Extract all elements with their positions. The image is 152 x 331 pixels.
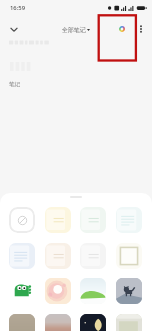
button[interactable]: Note background style — [116, 314, 142, 331]
staticText: 16:59 — [10, 4, 26, 12]
button[interactable]: Note background style — [80, 314, 106, 331]
button[interactable]: Collapse — [4, 20, 23, 39]
button[interactable]: Note background style — [9, 207, 35, 233]
staticText: 笔记 — [9, 81, 21, 88]
button[interactable]: 全部笔记 — [62, 26, 90, 33]
staticText: 全部笔记 — [62, 26, 86, 33]
button[interactable]: Note background style — [45, 278, 71, 304]
button[interactable]: Note background style — [45, 207, 71, 233]
button[interactable]: Note background style — [80, 207, 106, 233]
button[interactable]: Note background style — [45, 314, 71, 331]
button[interactable]: Note background style — [80, 243, 106, 269]
button[interactable]: Theme colour — [113, 20, 131, 38]
button[interactable]: Note background style — [9, 314, 35, 331]
button[interactable]: Note background style — [116, 278, 142, 304]
button[interactable]: Note background style — [9, 243, 35, 269]
button[interactable]: Note background style — [80, 278, 106, 304]
button[interactable]: Note background style — [45, 243, 71, 269]
button[interactable]: Note background style — [116, 207, 142, 233]
button[interactable]: Note background style — [9, 278, 35, 304]
button[interactable]: Note background style — [116, 243, 142, 269]
button[interactable]: More options — [132, 20, 150, 38]
